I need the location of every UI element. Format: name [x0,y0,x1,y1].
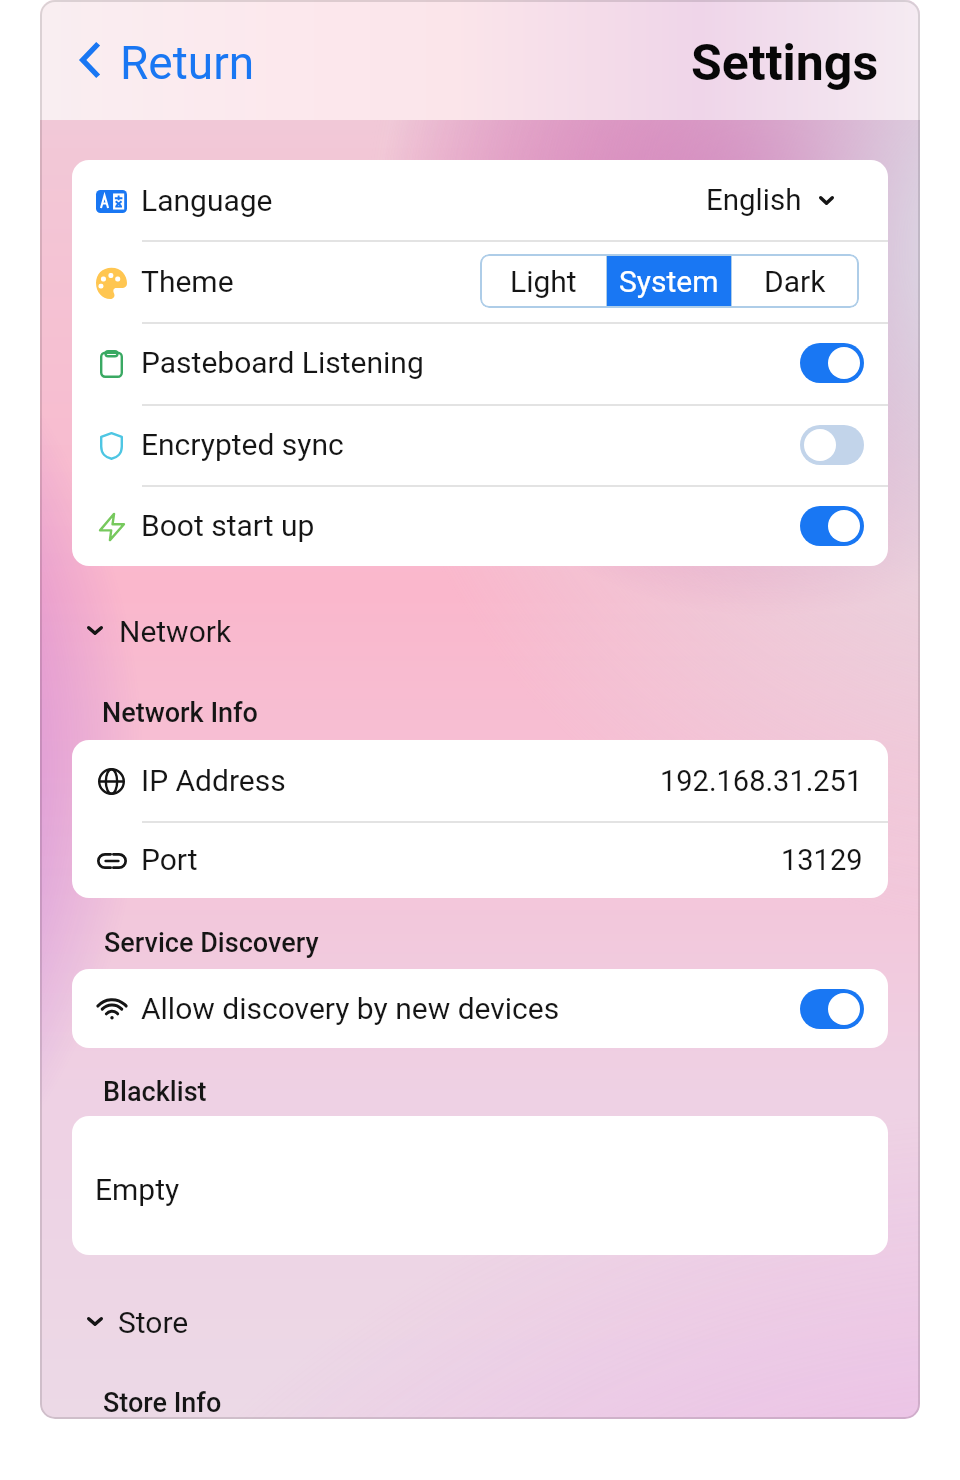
staticText: Blacklist [103,1076,207,1108]
staticText: Allow discovery by new devices [141,991,560,1026]
button[interactable]: Pasteboard Listening [72,322,888,403]
staticText: Store Info [103,1387,222,1419]
staticText: Pasteboard Listening [141,345,424,380]
staticText: Light [510,264,577,299]
button[interactable]: Language [72,160,888,240]
staticText: Dark [764,264,826,299]
staticText: Theme [141,264,234,299]
staticText: Empty [95,1172,180,1207]
staticText: Boot start up [141,508,315,543]
staticText: Encrypted sync [141,427,344,462]
button[interactable]: Port [72,821,888,898]
staticText: Settings [691,34,879,93]
button[interactable]: System [607,254,731,308]
staticText: Network [119,614,232,649]
staticText: 192.168.31.251 [660,764,863,798]
button[interactable]: Return [78,24,270,96]
button[interactable]: Encrypted sync [72,404,888,485]
button[interactable]: Store [75,1299,189,1343]
button[interactable]: Dark [732,254,858,308]
button[interactable]: Network [75,608,232,652]
staticText: Port [141,842,198,877]
staticText: Language [141,183,273,218]
button[interactable]: Allow discovery by new devices [72,969,888,1048]
staticText: IP Address [141,763,286,798]
staticText: English [706,183,802,218]
button[interactable]: Choose language [805,179,848,222]
button[interactable]: Boot start up [72,485,888,566]
staticText: Network Info [102,697,258,729]
button[interactable]: Disabled [800,425,864,465]
button[interactable]: Enabled [800,989,864,1029]
button[interactable]: Enabled [800,343,864,383]
staticText: Service Discovery [104,927,319,959]
staticText: System [619,264,719,299]
button[interactable]: IP Address [72,740,888,821]
staticText: Store [118,1305,189,1340]
button[interactable]: Light [480,254,606,308]
button[interactable]: Enabled [800,506,864,546]
button[interactable] [72,1116,888,1255]
staticText: 13129 [781,843,863,877]
staticText: Return [120,36,255,90]
button[interactable]: Theme [72,240,888,322]
